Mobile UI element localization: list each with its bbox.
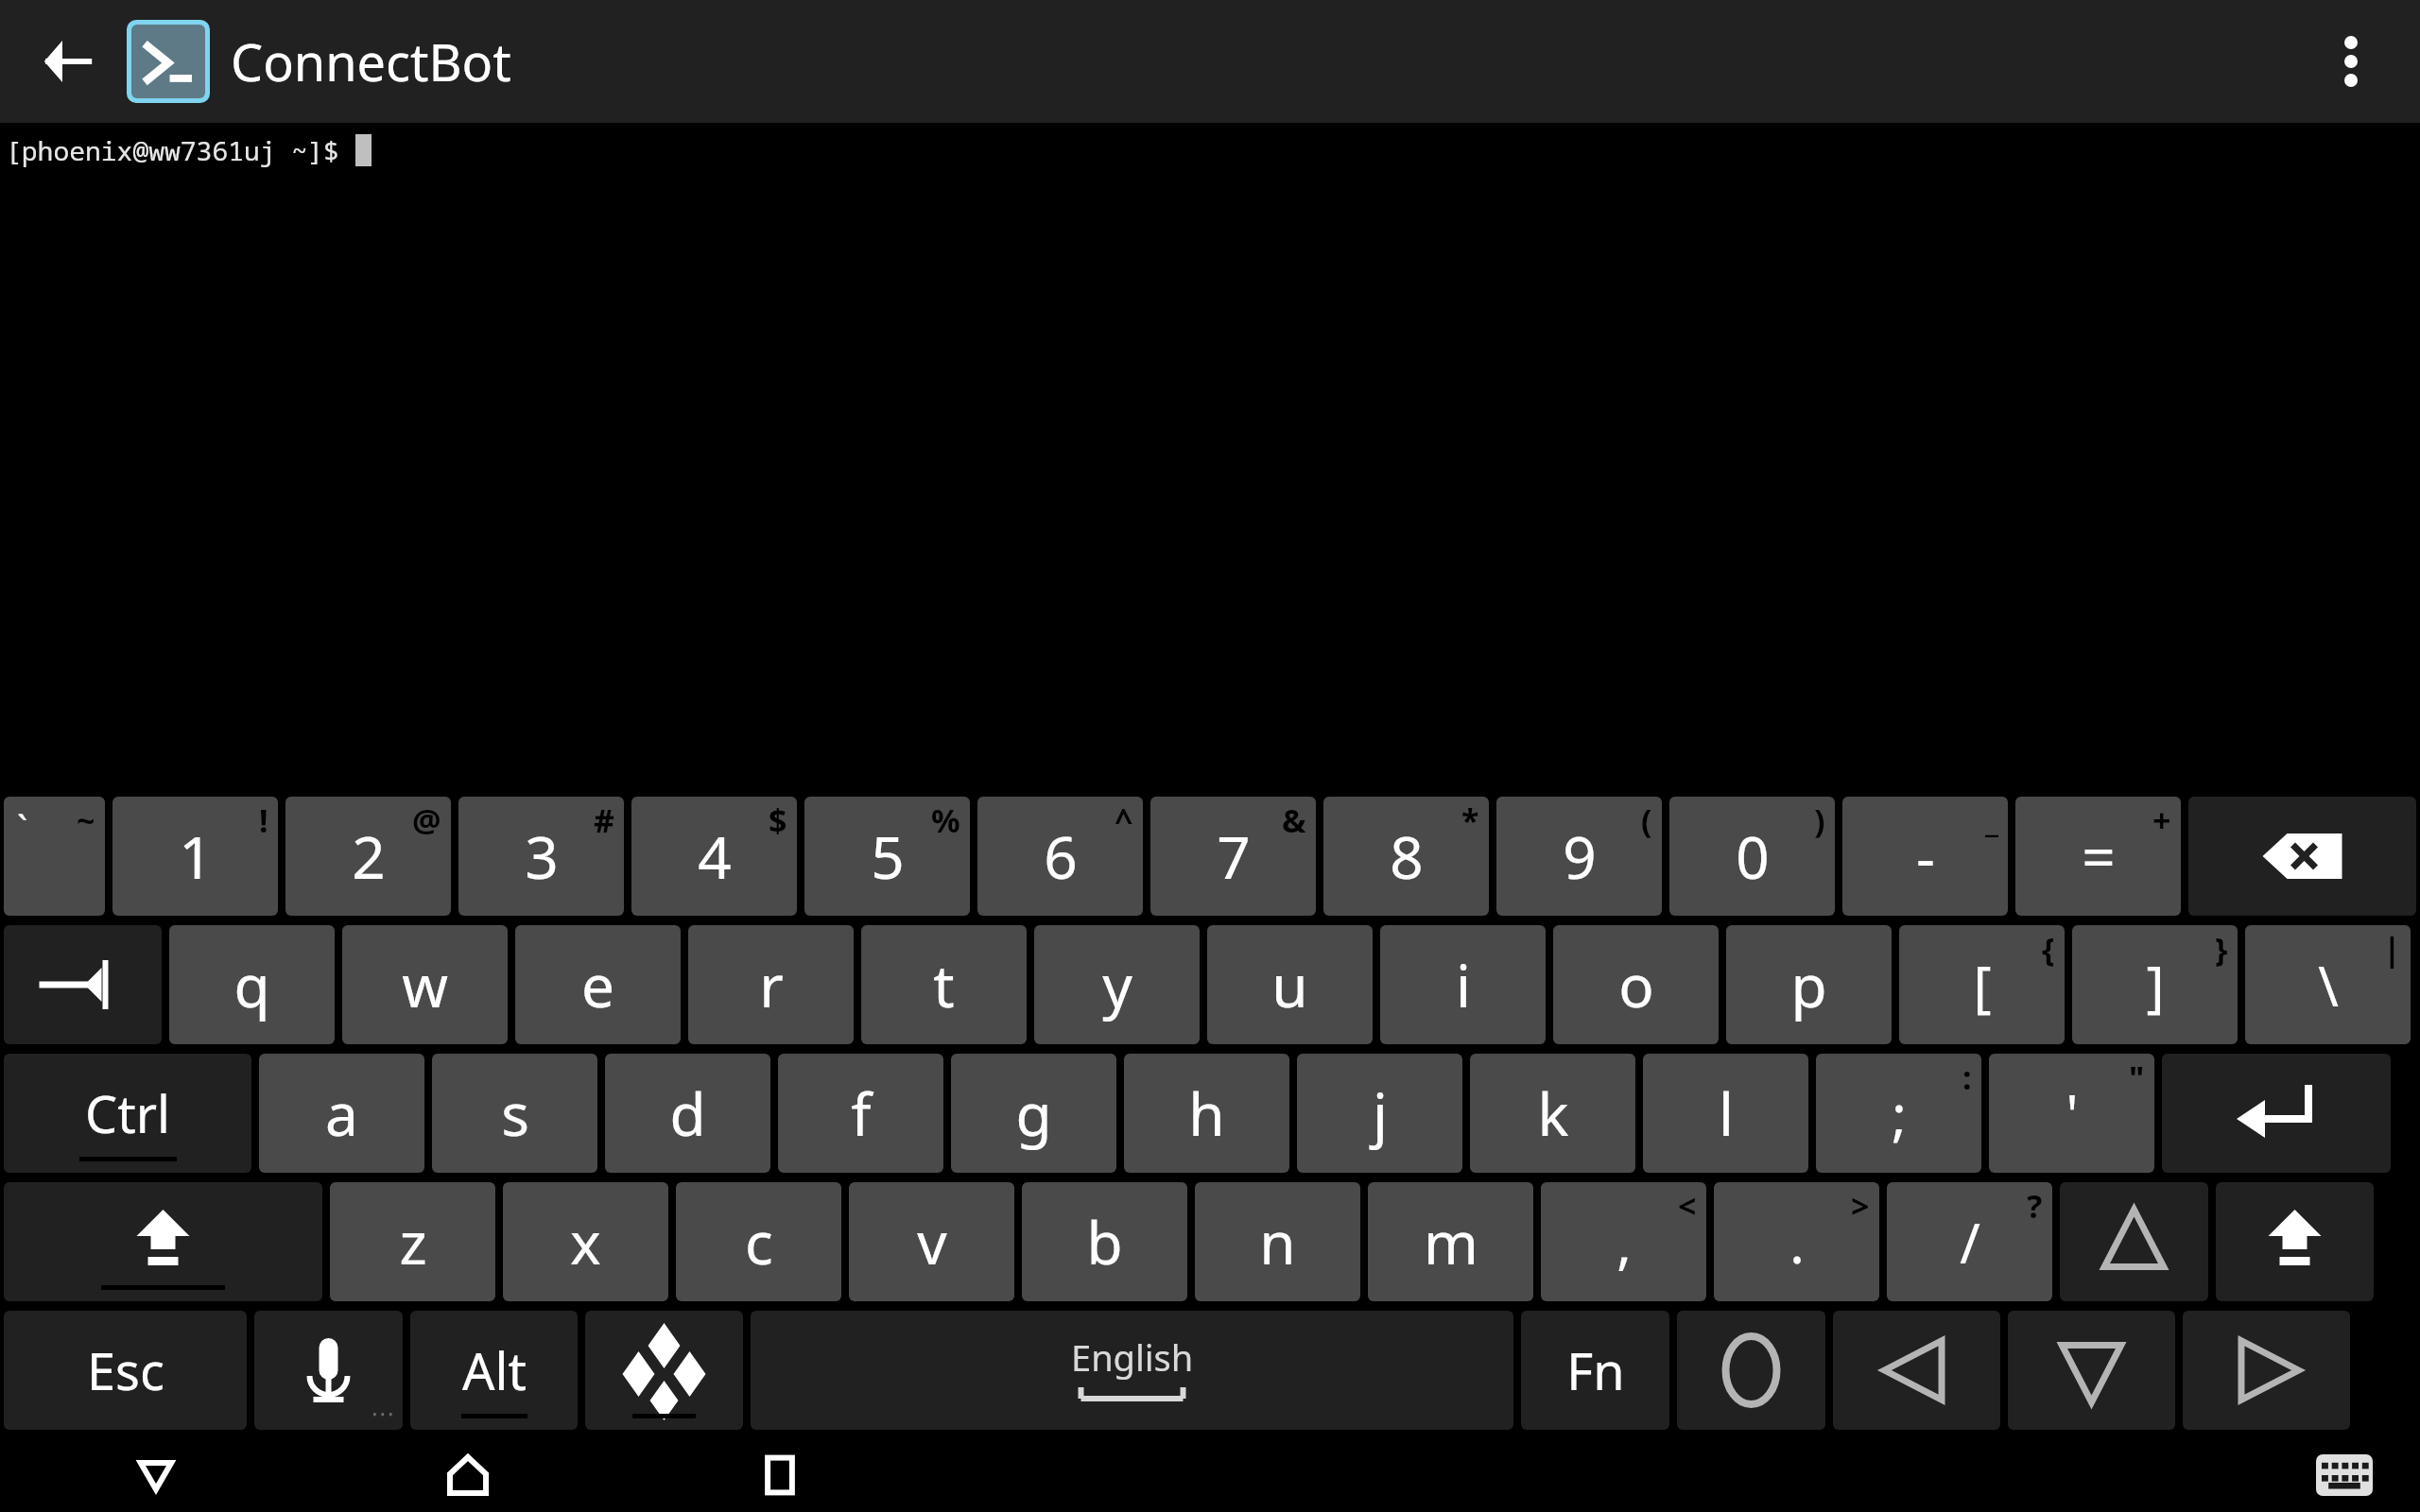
button[interactable]: x	[503, 1182, 668, 1301]
button[interactable]: n	[1195, 1182, 1360, 1301]
button[interactable]: Circle	[1677, 1311, 1825, 1430]
button[interactable]: -	[1842, 797, 2008, 916]
button[interactable]: Switch keyboard	[2278, 1438, 2411, 1512]
button[interactable]: /	[1887, 1182, 2052, 1301]
button[interactable]: y	[1034, 925, 1200, 1044]
staticText: b	[1086, 1202, 1123, 1281]
button[interactable]: \	[2245, 925, 2411, 1044]
button[interactable]: z	[330, 1182, 495, 1301]
staticText: [phoenix@ww7361uj ~]$	[6, 132, 355, 168]
staticText: ConnectBot	[231, 26, 511, 96]
button[interactable]: Back	[23, 16, 113, 107]
button[interactable]: j	[1297, 1054, 1462, 1173]
button[interactable]: r	[688, 925, 854, 1044]
button[interactable]: 2	[285, 797, 451, 916]
button[interactable]: Right	[2183, 1311, 2350, 1430]
staticText: 7	[1217, 816, 1251, 896]
button[interactable]: 0	[1669, 797, 1835, 916]
staticText: 8	[1390, 816, 1424, 896]
staticText: 3	[525, 816, 559, 896]
button[interactable]: Up	[2060, 1182, 2208, 1301]
staticText: &	[1282, 799, 1306, 842]
button[interactable]: b	[1022, 1182, 1187, 1301]
button[interactable]: c	[676, 1182, 841, 1301]
button[interactable]: Left	[1833, 1311, 2000, 1430]
staticText: |	[2383, 927, 2401, 971]
button[interactable]: v	[849, 1182, 1014, 1301]
button[interactable]: .	[1714, 1182, 1879, 1301]
button[interactable]: w	[342, 925, 508, 1044]
button[interactable]: Shift	[2216, 1182, 2374, 1301]
button[interactable]: '	[1989, 1054, 2154, 1173]
staticText: `	[17, 802, 28, 853]
button[interactable]: m	[1368, 1182, 1533, 1301]
button[interactable]: h	[1124, 1054, 1289, 1173]
button[interactable]: i	[1380, 925, 1546, 1044]
staticText: /	[1960, 1205, 1980, 1280]
button[interactable]: t	[861, 925, 1027, 1044]
staticText: $	[769, 799, 787, 842]
button[interactable]: 7	[1150, 797, 1316, 916]
button[interactable]: g	[951, 1054, 1116, 1173]
button[interactable]: u	[1207, 925, 1373, 1044]
button[interactable]: 8	[1323, 797, 1489, 916]
button[interactable]: 6	[977, 797, 1143, 916]
button[interactable]: Shift	[4, 1182, 322, 1301]
button[interactable]: p	[1726, 925, 1892, 1044]
staticText: c	[745, 1202, 773, 1281]
button[interactable]: Esc	[4, 1311, 247, 1430]
staticText: a	[325, 1074, 358, 1153]
button[interactable]: ]	[2072, 925, 2238, 1044]
button[interactable]: Tab	[4, 925, 162, 1044]
button[interactable]: More options	[2299, 9, 2403, 113]
button[interactable]: f	[778, 1054, 943, 1173]
button[interactable]: English	[751, 1311, 1513, 1430]
button[interactable]: k	[1470, 1054, 1635, 1173]
staticText: s	[501, 1074, 529, 1153]
button[interactable]: Backspace	[2188, 797, 2416, 916]
button[interactable]: d	[605, 1054, 770, 1173]
button[interactable]: 4	[631, 797, 797, 916]
staticText: n	[1259, 1202, 1296, 1281]
button[interactable]: Down	[2008, 1311, 2175, 1430]
button[interactable]: Home	[312, 1438, 624, 1512]
button[interactable]: a	[259, 1054, 424, 1173]
button[interactable]: Backquote	[4, 797, 105, 916]
staticText: e	[581, 945, 614, 1024]
button[interactable]: 5	[804, 797, 970, 916]
button[interactable]: q	[169, 925, 335, 1044]
staticText: 9	[1563, 816, 1597, 896]
button[interactable]: =	[2015, 797, 2181, 916]
staticText: <	[1678, 1184, 1697, 1228]
staticText: -	[1916, 816, 1935, 896]
staticText: q	[233, 945, 270, 1024]
button[interactable]: [	[1899, 925, 2065, 1044]
staticText: ?	[2027, 1184, 2043, 1228]
staticText: Ctrl	[85, 1078, 170, 1148]
button[interactable]: o	[1553, 925, 1719, 1044]
button[interactable]: s	[432, 1054, 597, 1173]
staticText: 4	[698, 816, 732, 896]
staticText: '	[2066, 1076, 2079, 1151]
staticText: 5	[871, 816, 905, 896]
button[interactable]: 1	[112, 797, 278, 916]
button[interactable]: l	[1643, 1054, 1808, 1173]
staticText: 1	[179, 816, 213, 896]
button[interactable]: Ctrl	[4, 1054, 251, 1173]
button[interactable]: ;	[1816, 1054, 1981, 1173]
button[interactable]: 3	[458, 797, 624, 916]
button[interactable]: Recent apps	[624, 1438, 936, 1512]
button[interactable]: 9	[1496, 797, 1662, 916]
button[interactable]: Symbols	[585, 1311, 743, 1430]
button[interactable]: ,	[1541, 1182, 1706, 1301]
staticText: ;	[1892, 1076, 1907, 1151]
staticText: 2	[352, 816, 386, 896]
button[interactable]: Hide keyboard	[0, 1438, 312, 1512]
staticText: >	[1851, 1184, 1870, 1228]
button[interactable]: Enter	[2162, 1054, 2391, 1173]
button[interactable]: Voice input	[254, 1311, 403, 1430]
button[interactable]: e	[515, 925, 681, 1044]
button[interactable]: Alt	[410, 1311, 578, 1430]
button[interactable]: Fn	[1521, 1311, 1669, 1430]
staticText: p	[1790, 945, 1827, 1024]
